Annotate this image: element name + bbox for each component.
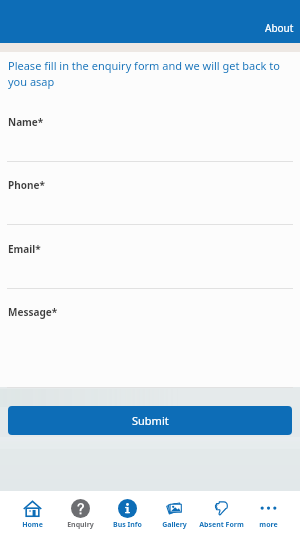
- staticText: more: [259, 520, 278, 530]
- staticText: Bus Info: [113, 520, 142, 530]
- button[interactable]: Gallery: [151, 491, 198, 533]
- button[interactable]: Submit: [8, 406, 292, 435]
- staticText: Message*: [8, 305, 58, 319]
- button[interactable]: Enquiry: [56, 491, 104, 533]
- button[interactable]: Absent Form: [198, 491, 245, 533]
- staticText: Gallery: [162, 520, 187, 530]
- staticText: Phone*: [8, 178, 45, 192]
- staticText: Name*: [8, 115, 44, 129]
- button[interactable]: more: [245, 491, 292, 533]
- staticText: Submit: [132, 413, 169, 428]
- staticText: Absent Form: [199, 520, 244, 530]
- staticText: Please fill in the enquiry form and we w…: [8, 58, 292, 89]
- staticText: About: [265, 21, 294, 35]
- staticText: Home: [22, 520, 43, 530]
- staticText: Email*: [8, 242, 41, 256]
- button[interactable]: Bus Info: [104, 491, 151, 533]
- staticText: Enquiry: [67, 520, 94, 530]
- button[interactable]: About: [255, 1, 300, 43]
- button[interactable]: Home: [8, 491, 56, 533]
